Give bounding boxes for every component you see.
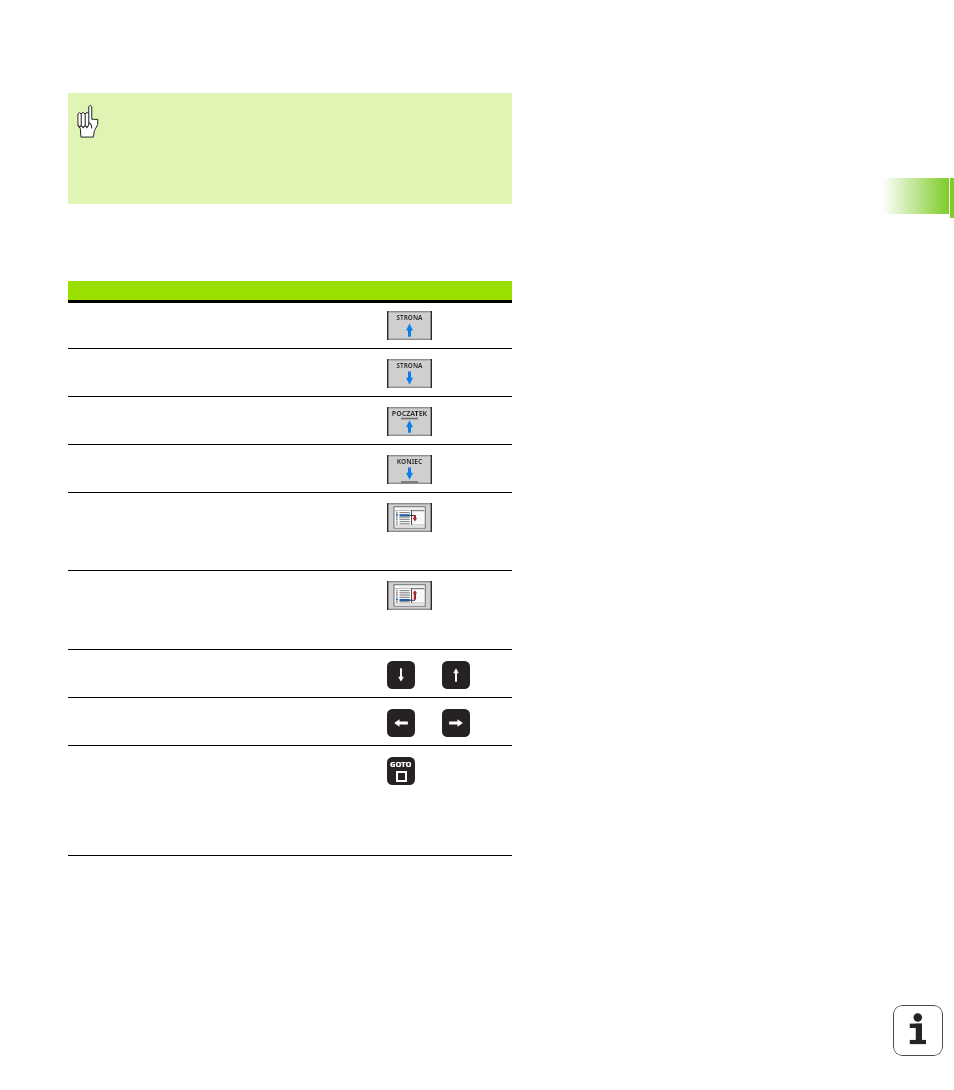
staticText: STRONA <box>387 313 432 322</box>
button[interactable]: STRONA <box>387 359 432 388</box>
button[interactable]: KONIEC <box>387 455 432 484</box>
staticText: KONIEC <box>387 457 432 466</box>
button[interactable]: Arrow up <box>442 661 470 689</box>
button[interactable]: Information <box>893 1005 943 1056</box>
button[interactable]: STRONA <box>387 311 432 340</box>
staticText: GOTO <box>390 759 412 769</box>
button[interactable]: POCZATEK <box>387 407 432 436</box>
button[interactable]: Section tab <box>882 178 949 214</box>
button[interactable]: GOTO key <box>387 757 415 785</box>
staticText: STRONA <box>387 361 432 370</box>
button[interactable]: Next field <box>387 503 432 532</box>
button[interactable]: Arrow down <box>387 661 415 689</box>
button[interactable]: Arrow left <box>387 709 415 737</box>
button[interactable]: Arrow right <box>442 709 470 737</box>
staticText: POCZATEK <box>387 409 432 419</box>
button[interactable]: Previous field <box>387 581 432 610</box>
